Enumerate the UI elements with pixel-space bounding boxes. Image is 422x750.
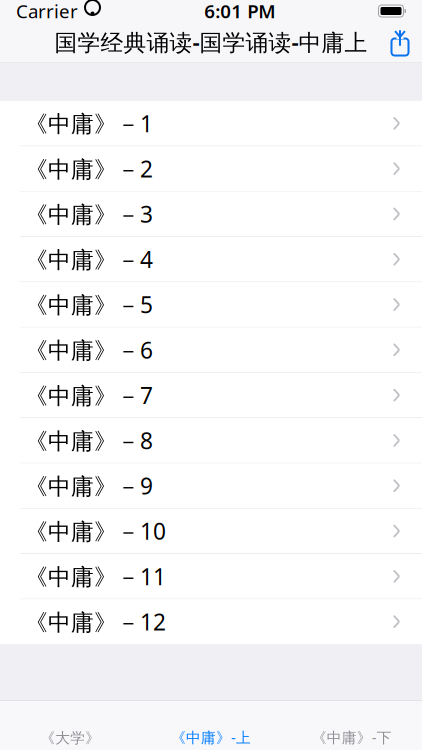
button[interactable]: 《中庸》－12 xyxy=(0,599,422,644)
button[interactable]: 《中庸》－3 xyxy=(0,192,422,236)
staticText: 《中庸》-上 xyxy=(171,727,251,747)
staticText: 《中庸》－4 xyxy=(25,244,153,274)
staticText: 《中庸》－8 xyxy=(25,425,153,455)
staticText: 《中庸》－3 xyxy=(25,199,153,229)
staticText: 6:01 PM xyxy=(204,0,275,23)
button[interactable]: 《中庸》－8 xyxy=(0,418,422,463)
staticText: 《中庸》－6 xyxy=(25,335,153,365)
staticText: 《中庸》－5 xyxy=(25,289,153,320)
staticText: 《中庸》－9 xyxy=(25,471,153,501)
button[interactable]: 《中庸》－7 xyxy=(0,373,422,417)
staticText: 《中庸》－10 xyxy=(25,516,166,546)
button[interactable]: 《中庸》－4 xyxy=(0,237,422,282)
button[interactable]: 《中庸》－11 xyxy=(0,554,422,599)
staticText: 《大学》 xyxy=(40,729,100,747)
button[interactable]: 《中庸》-下 xyxy=(281,701,422,750)
button[interactable]: 《中庸》－2 xyxy=(0,146,422,191)
button[interactable]: 《中庸》－1 xyxy=(0,101,422,146)
staticText: Carrier xyxy=(16,0,78,23)
button[interactable]: 《中庸》－10 xyxy=(0,509,422,553)
button[interactable]: 《中庸》－5 xyxy=(0,282,422,327)
button[interactable]: 《中庸》－6 xyxy=(0,327,422,372)
staticText: 《中庸》-下 xyxy=(312,727,392,747)
staticText: 《中庸》－1 xyxy=(25,108,153,138)
button[interactable]: 《中庸》－9 xyxy=(0,463,422,508)
button[interactable]: 《中庸》-上 xyxy=(141,701,281,750)
button[interactable]: Share xyxy=(378,22,422,62)
button[interactable]: 《大学》 xyxy=(0,701,141,750)
staticText: 《中庸》－2 xyxy=(25,154,153,184)
staticText: 《中庸》－11 xyxy=(25,561,166,591)
staticText: 《中庸》－12 xyxy=(25,607,166,637)
staticText: 国学经典诵读-国学诵读-中庸上 xyxy=(54,27,367,57)
staticText: 《中庸》－7 xyxy=(25,380,153,410)
